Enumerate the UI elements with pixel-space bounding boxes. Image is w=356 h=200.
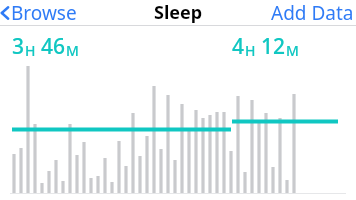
button[interactable]: 3 [12,32,79,61]
staticText: 4 [232,32,245,61]
staticText: 46 [41,32,66,61]
staticText: Sleep [154,0,203,25]
staticText: M [66,41,79,60]
staticText: 3 [12,32,25,61]
staticText: 12 [261,32,286,61]
staticText: H [245,41,256,60]
staticText: M [286,41,299,60]
button[interactable]: Add Data [269,0,356,25]
staticText: Add Data [271,0,354,25]
staticText: Browse [11,0,77,25]
button[interactable]: Browse [0,0,83,25]
staticText: H [25,41,36,60]
button[interactable]: 4 [232,32,299,61]
